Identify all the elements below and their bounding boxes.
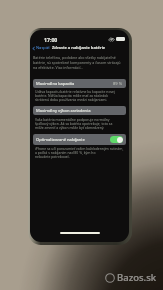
- button[interactable]: Maximálna kapacita: [33, 79, 126, 88]
- staticText: 17:00: [44, 36, 58, 43]
- button[interactable]: Naspäť: [31, 44, 51, 52]
- staticText: 89 %: [113, 81, 123, 87]
- staticText: Zdravie a nabíjanie batérie: [52, 45, 106, 51]
- staticText: Naspäť: [36, 45, 50, 51]
- staticText: Bazos.sk: [117, 271, 157, 284]
- button[interactable]: Optimalizované nabíjanie: [33, 134, 126, 145]
- staticText: Maximálny výkon zariadenia: [36, 108, 91, 114]
- staticText: Optimalizované nabíjanie: [36, 137, 85, 143]
- staticText: Udáva kapacitu batérie relatívne ku kapa…: [35, 89, 127, 102]
- staticText: Maximálna kapacita: [36, 81, 75, 87]
- button[interactable]: Maximálny výkon zariadenia: [33, 106, 126, 115]
- staticText: Vaša batéria momentálne podporuje normál…: [35, 117, 127, 130]
- staticText: Batérie telefónu, podobne ako všetky nab…: [33, 55, 127, 70]
- staticText: iPhone sa učí porozumieť vašim každodenn…: [35, 146, 127, 159]
- button[interactable]: Optimalizované nabíjanie: [110, 136, 123, 143]
